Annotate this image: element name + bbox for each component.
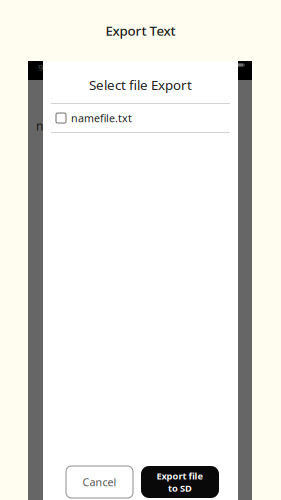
staticText: Cancel — [82, 475, 116, 489]
staticText: Export Text — [105, 22, 175, 39]
button[interactable]: Export file — [141, 466, 219, 498]
staticText: Export file — [156, 470, 203, 482]
button[interactable]: namefile.txt — [43, 104, 238, 132]
staticText: namefile.txt — [36, 118, 102, 134]
staticText: Select file Export — [89, 76, 192, 94]
staticText: namefile.txt — [71, 111, 132, 125]
button[interactable]: Cancel — [66, 466, 133, 498]
staticText: to SD — [168, 482, 192, 494]
staticText: 9:41 — [38, 61, 56, 73]
